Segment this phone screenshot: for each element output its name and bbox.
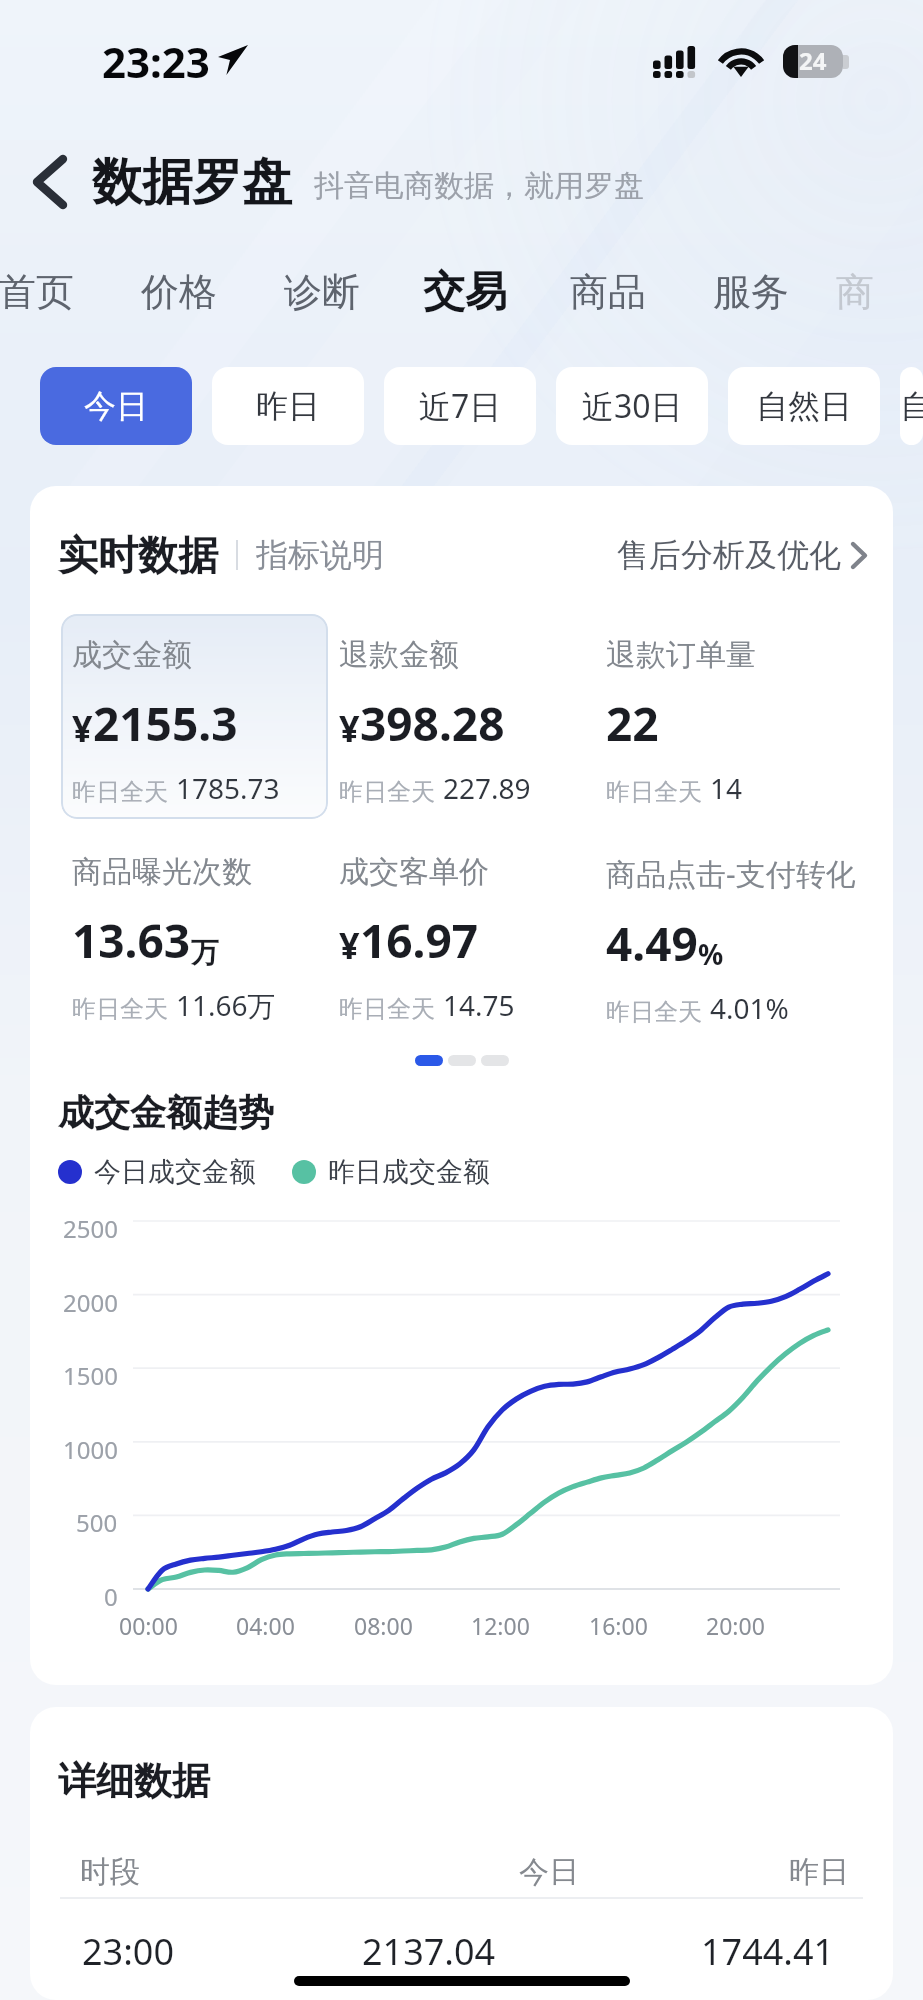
staticText: 14.75 [443, 986, 515, 1024]
staticText: 2000 [63, 1286, 118, 1319]
staticText: 商 [836, 268, 874, 316]
staticText: 12:00 [471, 1610, 530, 1641]
staticText: 近7日 [419, 384, 502, 428]
button[interactable]: 诊断 [250, 234, 393, 350]
staticText: 退款订单量 [606, 636, 756, 674]
button[interactable]: 商品曝光次数 [61, 831, 328, 1036]
staticText: 今日 [84, 386, 148, 426]
staticText: 自然日 [756, 386, 852, 426]
staticText: 昨日全天 [339, 994, 435, 1024]
button[interactable]: 交易 [393, 234, 536, 350]
staticText: 昨日全天 [339, 777, 435, 807]
staticText: 诊断 [284, 268, 360, 316]
staticText: 1744.41 [701, 1927, 835, 1976]
button[interactable]: 自定义 [900, 367, 923, 445]
staticText: 11.66万 [176, 986, 276, 1024]
button[interactable]: 成交金额 [61, 614, 328, 819]
staticText: 08:00 [354, 1610, 413, 1641]
staticText: 2155.3 [93, 692, 238, 755]
staticText: 首页 [0, 268, 74, 316]
staticText: 4.49 [606, 912, 698, 975]
staticText: 今日 [519, 1853, 579, 1891]
button[interactable]: 指标说明 [256, 535, 384, 575]
staticText: 00:00 [119, 1610, 178, 1641]
staticText: 成交金额 [72, 636, 192, 674]
staticText: 昨日 [789, 1853, 849, 1891]
staticText: 退款金额 [339, 636, 459, 674]
button[interactable]: 近30日 [556, 367, 708, 445]
staticText: 04:00 [236, 1610, 295, 1641]
button[interactable]: 退款金额 [328, 614, 595, 819]
staticText: 13.63 [72, 909, 191, 972]
staticText: 4.01% [710, 989, 789, 1027]
staticText: 详细数据 [58, 1757, 210, 1805]
staticText: 398.28 [360, 692, 505, 755]
staticText: 昨日全天 [606, 777, 702, 807]
button[interactable]: Back [16, 148, 84, 216]
staticText: ¥ [72, 704, 93, 753]
staticText: 1785.73 [176, 769, 280, 807]
button[interactable]: 商品 [536, 234, 679, 350]
staticText: 16.97 [360, 909, 479, 972]
staticText: 交易 [423, 266, 507, 319]
staticText: 1000 [63, 1433, 118, 1466]
staticText: 227.89 [443, 769, 531, 807]
staticText: ¥ [339, 704, 360, 753]
staticText: 24 [799, 45, 827, 77]
staticText: 近30日 [582, 384, 683, 428]
staticText: 500 [76, 1506, 118, 1539]
staticText: 0 [104, 1580, 118, 1613]
staticText: 23:00 [82, 1927, 175, 1976]
staticText: 成交金额趋势 [58, 1090, 274, 1135]
button[interactable]: 自然日 [728, 367, 880, 445]
staticText: 服务 [713, 268, 789, 316]
button[interactable]: 服务 [679, 234, 822, 350]
button[interactable]: 昨日 [212, 367, 364, 445]
staticText: 昨日全天 [606, 997, 702, 1027]
staticText: 22 [606, 692, 659, 755]
button[interactable]: 商 [822, 234, 887, 350]
staticText: 商品曝光次数 [72, 853, 252, 891]
staticText: 实时数据 [58, 530, 218, 580]
staticText: 抖音电商数据，就用罗盘 [314, 167, 644, 205]
button[interactable]: 首页 [0, 234, 107, 350]
staticText: 成交客单价 [339, 853, 489, 891]
button[interactable]: 成交客单价 [328, 831, 595, 1036]
staticText: 14 [710, 769, 743, 807]
button[interactable]: 退款订单量 [595, 614, 862, 819]
staticText: 售后分析及优化 [617, 535, 841, 575]
staticText: 2500 [63, 1212, 118, 1245]
staticText: 商品点击-支付转化 [606, 853, 856, 894]
staticText: 昨日 [256, 386, 320, 426]
staticText: 万 [191, 935, 219, 970]
staticText: 时段 [80, 1853, 140, 1891]
button[interactable]: 今日 [40, 367, 192, 445]
button[interactable]: 近7日 [384, 367, 536, 445]
staticText: 16:00 [589, 1610, 648, 1641]
staticText: 23:23 [102, 33, 210, 90]
staticText: 今日成交金额 [94, 1155, 256, 1189]
button[interactable]: 价格 [107, 234, 250, 350]
staticText: 20:00 [706, 1610, 765, 1641]
button[interactable]: 商品点击-支付转化 [595, 831, 862, 1039]
staticText: 2137.04 [362, 1927, 496, 1976]
staticText: 1500 [63, 1359, 118, 1392]
staticText: % [698, 935, 724, 973]
button[interactable]: 售后分析及优化 [617, 535, 865, 575]
staticText: 昨日全天 [72, 994, 168, 1024]
staticText: 数据罗盘 [92, 151, 292, 214]
staticText: ¥ [339, 921, 360, 970]
staticText: 自定义 [900, 386, 923, 426]
staticText: 价格 [141, 268, 217, 316]
staticText: 商品 [570, 268, 646, 316]
staticText: 昨日成交金额 [328, 1155, 490, 1189]
staticText: 昨日全天 [72, 777, 168, 807]
